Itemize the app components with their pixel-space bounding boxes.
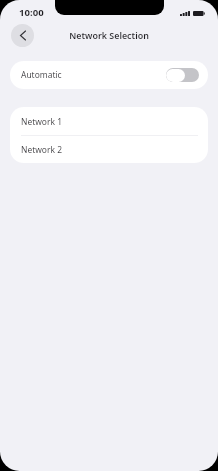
button[interactable]: Back bbox=[11, 24, 34, 47]
staticText: Network 2 bbox=[21, 144, 62, 156]
staticText: 10:00 bbox=[19, 6, 44, 19]
staticText: Network 1 bbox=[21, 116, 62, 128]
button[interactable]: Network 1 bbox=[10, 107, 208, 135]
staticText: Automatic bbox=[21, 69, 62, 81]
button[interactable]: Network 2 bbox=[10, 135, 208, 163]
button[interactable]: Automatic bbox=[10, 61, 208, 89]
staticText: Network Selection bbox=[69, 29, 149, 41]
button[interactable]: Automatic toggle bbox=[166, 68, 199, 82]
